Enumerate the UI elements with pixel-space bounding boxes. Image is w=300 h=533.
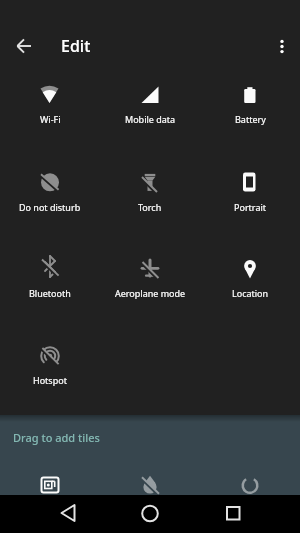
button[interactable] xyxy=(132,467,168,495)
staticText: Hotspot xyxy=(33,374,67,386)
button[interactable] xyxy=(217,497,249,529)
staticText: Mobile data xyxy=(125,113,176,125)
button[interactable] xyxy=(266,30,298,62)
staticText: Do not disturb xyxy=(19,201,81,213)
staticText: Aeroplane mode xyxy=(115,287,186,299)
staticText: Edit xyxy=(61,35,91,57)
button[interactable]: Portrait xyxy=(200,158,300,236)
staticText: Portrait xyxy=(234,201,267,213)
staticText: Wi-Fi xyxy=(40,113,61,125)
button[interactable] xyxy=(232,467,268,495)
button[interactable]: Bluetooth xyxy=(0,244,100,322)
staticText: Bluetooth xyxy=(29,287,71,299)
button[interactable]: Aeroplane mode xyxy=(100,244,200,322)
button[interactable] xyxy=(134,497,166,529)
staticText: Battery xyxy=(235,113,266,125)
button[interactable]: Location xyxy=(200,244,300,322)
button[interactable]: Do not disturb xyxy=(0,158,100,236)
staticText: Torch xyxy=(138,201,162,213)
button[interactable]: Torch xyxy=(100,158,200,236)
button[interactable] xyxy=(8,30,40,62)
button[interactable]: Mobile data xyxy=(100,70,200,148)
button[interactable]: Battery xyxy=(200,70,300,148)
button[interactable] xyxy=(52,497,84,529)
button[interactable] xyxy=(32,467,68,495)
staticText: Location xyxy=(232,287,269,299)
staticText: Drag to add tiles xyxy=(13,430,100,445)
button[interactable]: Hotspot xyxy=(0,331,100,409)
button[interactable]: Wi-Fi xyxy=(0,70,100,148)
